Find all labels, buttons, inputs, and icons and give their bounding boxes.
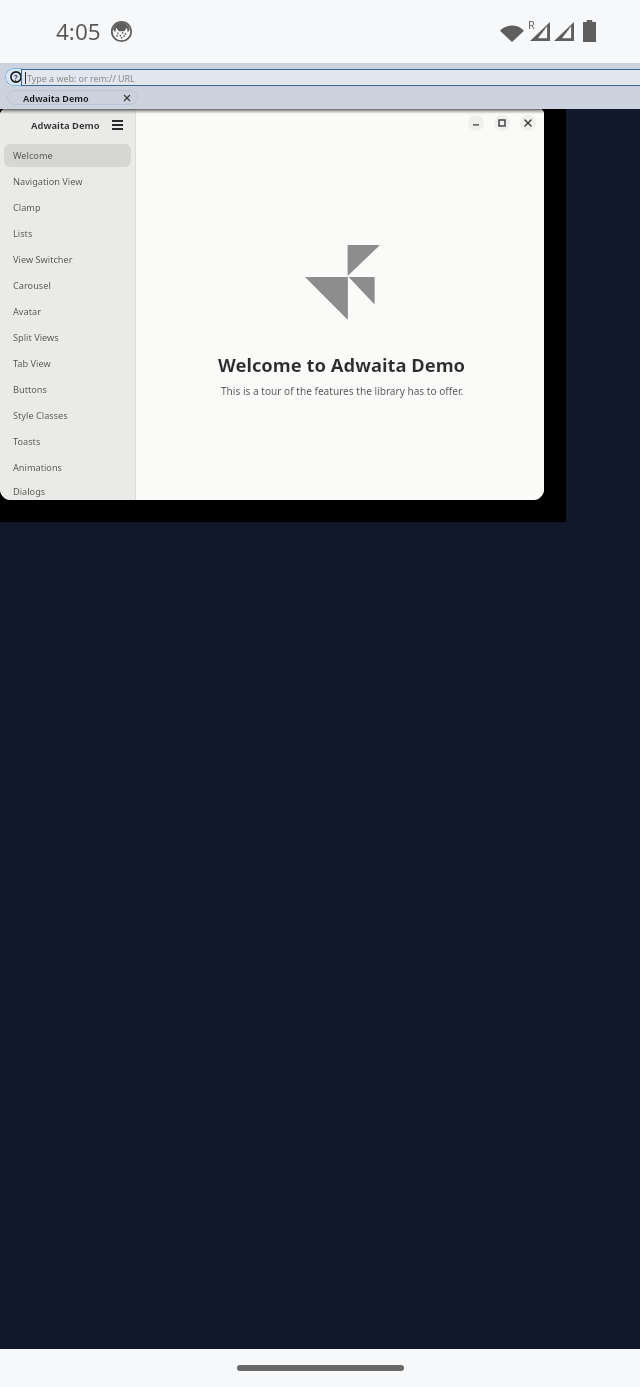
button[interactable]: Navigation View bbox=[4, 170, 131, 193]
button[interactable]: Minimize bbox=[468, 115, 484, 131]
button[interactable]: Help bbox=[5, 68, 22, 86]
button[interactable]: Style Classes bbox=[4, 404, 131, 427]
button[interactable]: Home bbox=[237, 1365, 404, 1371]
staticText: Toasts bbox=[13, 435, 41, 448]
staticText: Split Views bbox=[13, 331, 59, 344]
staticText: Carousel bbox=[13, 279, 51, 292]
staticText: Adwaita Demo bbox=[31, 119, 100, 132]
staticText: Type a web: or rem:// URL bbox=[27, 72, 135, 84]
button[interactable]: Main menu bbox=[108, 116, 126, 134]
button[interactable]: Carousel bbox=[4, 274, 131, 297]
staticText: ? bbox=[14, 72, 18, 83]
button[interactable]: Avatar bbox=[4, 300, 131, 323]
button[interactable]: Adwaita Demo bbox=[7, 90, 138, 105]
button[interactable]: Maximize bbox=[494, 115, 510, 131]
staticText: Tab View bbox=[13, 357, 51, 370]
staticText: Dialogs bbox=[13, 485, 46, 498]
staticText: Avatar bbox=[13, 305, 41, 318]
staticText: Welcome to Adwaita Demo bbox=[218, 352, 466, 377]
staticText: Navigation View bbox=[13, 175, 83, 188]
staticText: Welcome bbox=[13, 149, 53, 162]
staticText: 4:05 bbox=[56, 16, 101, 47]
staticText: View Switcher bbox=[13, 253, 73, 266]
staticText: Adwaita Demo bbox=[23, 92, 89, 104]
button[interactable]: Dialogs bbox=[4, 482, 131, 500]
button[interactable]: Buttons bbox=[4, 378, 131, 401]
button[interactable]: Tab View bbox=[4, 352, 131, 375]
button[interactable]: Type a web: or rem:// URL bbox=[21, 69, 640, 86]
staticText: Buttons bbox=[13, 383, 47, 396]
staticText: R bbox=[528, 17, 535, 32]
button[interactable]: Split Views bbox=[4, 326, 131, 349]
button[interactable]: Welcome bbox=[4, 144, 131, 167]
button[interactable]: Animations bbox=[4, 456, 131, 479]
button[interactable]: Toasts bbox=[4, 430, 131, 453]
staticText: Animations bbox=[13, 461, 62, 474]
staticText: Style Classes bbox=[13, 409, 68, 422]
button[interactable]: Close tab bbox=[121, 92, 132, 103]
staticText: Clamp bbox=[13, 201, 41, 214]
button[interactable]: Lists bbox=[4, 222, 131, 245]
staticText: Lists bbox=[13, 227, 33, 240]
button[interactable]: Clamp bbox=[4, 196, 131, 219]
button[interactable]: View Switcher bbox=[4, 248, 131, 271]
button[interactable]: Close bbox=[520, 115, 536, 131]
staticText: This is a tour of the features the libra… bbox=[221, 384, 464, 398]
